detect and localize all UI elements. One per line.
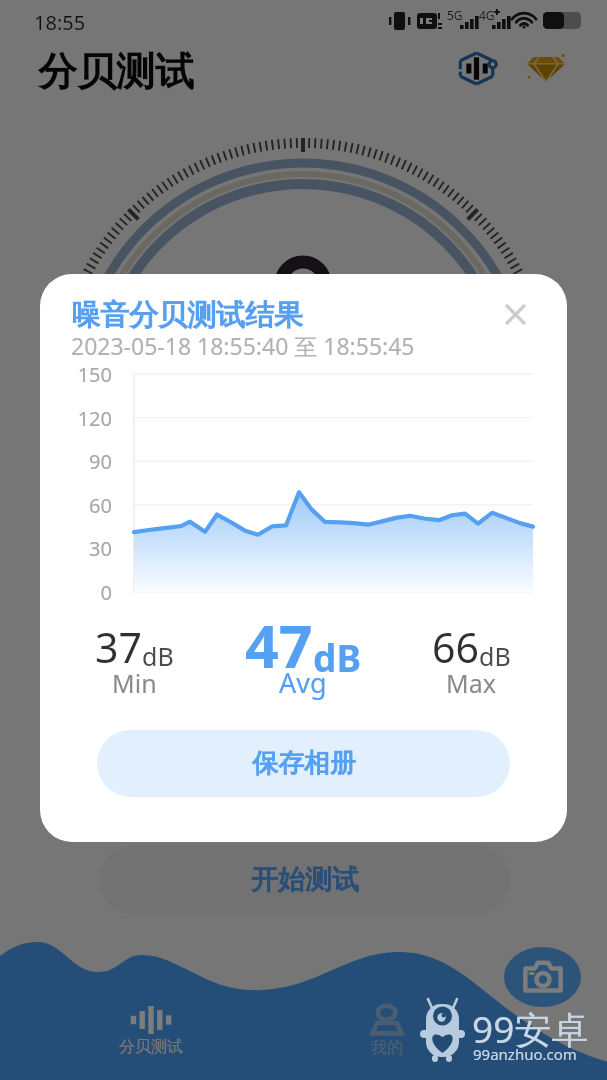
- staticText: 18:55: [34, 9, 86, 36]
- staticText: 我的: [371, 1038, 403, 1058]
- button[interactable]: Premium: [522, 44, 570, 92]
- staticText: 5G: [447, 7, 463, 23]
- staticText: 分贝测试: [119, 1037, 183, 1057]
- staticText: Max: [446, 666, 496, 700]
- staticText: 0: [40, 579, 112, 606]
- staticText: 99安卓: [472, 1003, 589, 1054]
- staticText: 2023-05-18 18:55:40 至 18:55:45: [71, 330, 415, 361]
- staticText: 120: [40, 405, 112, 432]
- staticText: 90: [40, 448, 112, 475]
- staticText: 37: [95, 619, 142, 675]
- staticText: dB: [479, 639, 511, 673]
- button[interactable]: 保存相册: [97, 730, 510, 797]
- staticText: 30: [40, 535, 112, 562]
- staticText: 150: [40, 361, 112, 388]
- staticText: 60: [40, 492, 112, 519]
- button[interactable]: Decibel meter: [452, 44, 500, 92]
- button[interactable]: 分贝测试: [107, 1000, 195, 1060]
- button[interactable]: 开始测试: [99, 845, 510, 915]
- staticText: Min: [112, 666, 157, 700]
- staticText: dB: [313, 632, 361, 682]
- staticText: 噪音分贝测试结果: [71, 297, 303, 334]
- staticText: Avg: [279, 664, 327, 701]
- button[interactable]: 我的: [343, 1000, 431, 1060]
- staticText: 4G: [479, 7, 495, 23]
- button[interactable]: Camera: [504, 947, 581, 1007]
- button[interactable]: Close: [489, 288, 541, 340]
- staticText: 开始测试: [251, 863, 359, 897]
- staticText: 47: [245, 605, 313, 685]
- staticText: 99anzhuo.com: [473, 1044, 577, 1064]
- staticText: 分贝测试: [38, 47, 194, 96]
- staticText: 保存相册: [252, 747, 356, 780]
- staticText: 66: [432, 619, 479, 675]
- staticText: dB: [142, 639, 174, 673]
